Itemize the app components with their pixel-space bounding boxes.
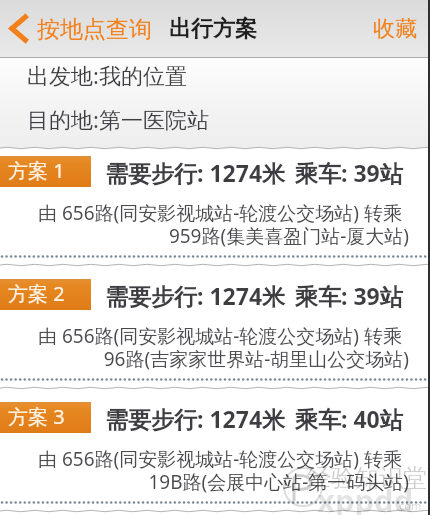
staticText: 959路(集美喜盈门站-厦大站)	[38, 223, 409, 249]
staticText: 乘车: 40站	[295, 403, 403, 434]
staticText: 由 656路(同安影视城站-轮渡公交场站) 转乘	[38, 446, 409, 472]
staticText: 乘车: 39站	[295, 157, 403, 188]
other: Back	[6, 10, 28, 46]
staticText: 经验知识堂	[307, 463, 427, 493]
staticText: 由 656路(同安影视城站-轮渡公交场站) 转乘	[38, 323, 409, 349]
staticText: 需要步行: 1274米	[105, 157, 286, 188]
staticText: 出行方案	[169, 15, 257, 43]
button[interactable]: 收藏	[373, 15, 417, 43]
staticText: 方案 2	[8, 280, 65, 307]
staticText: 按地点查询	[37, 15, 152, 44]
button[interactable]: 方案 3	[0, 398, 430, 515]
staticText: 96路(吉家家世界站-胡里山公交场站)	[38, 346, 409, 372]
staticText: .com	[396, 498, 422, 513]
staticText: 乘车: 39站	[295, 280, 403, 311]
staticText: 方案 1	[8, 157, 65, 184]
button[interactable]: 方案 2	[0, 275, 430, 398]
staticText: 目的地:第一医院站	[27, 104, 209, 134]
staticText: 出发地:我的位置	[27, 60, 187, 90]
staticText: 需要步行: 1274米	[105, 403, 286, 434]
button[interactable]: 方案 1	[0, 152, 430, 275]
button[interactable]: Back	[4, 10, 154, 46]
staticText: 19B路(会展中心站-第一码头站)	[38, 469, 409, 495]
staticText: 由 656路(同安影视城站-轮渡公交场站) 转乘	[38, 200, 409, 226]
staticText: xppdd	[317, 479, 414, 515]
staticText: 方案 3	[8, 403, 65, 430]
staticText: 需要步行: 1274米	[105, 280, 286, 311]
